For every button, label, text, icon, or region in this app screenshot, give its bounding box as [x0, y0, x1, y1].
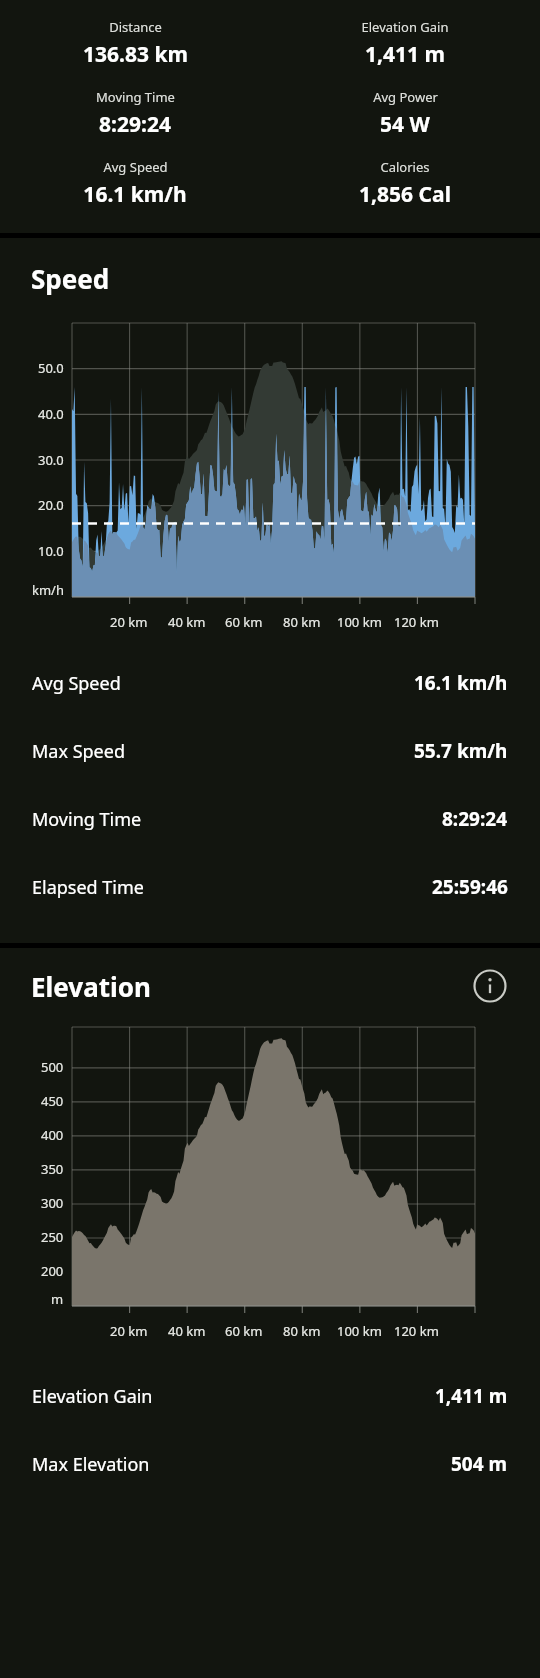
button[interactable]: Distance: [0, 18, 270, 69]
staticText: Moving Time: [32, 807, 142, 832]
staticText: Elevation Gain: [32, 1384, 153, 1409]
staticText: 60 km: [225, 1322, 263, 1340]
staticText: 54 W: [380, 110, 430, 139]
staticText: Avg Power: [373, 88, 438, 106]
staticText: 100 km: [337, 1322, 382, 1340]
button[interactable]: Avg Power: [270, 88, 540, 139]
staticText: 40 km: [168, 613, 206, 631]
staticText: Elevation Gain: [361, 18, 449, 36]
staticText: Avg Speed: [103, 158, 168, 176]
staticText: Elapsed Time: [32, 875, 144, 900]
staticText: 120 km: [394, 613, 439, 631]
staticText: 8:29:24: [99, 110, 171, 139]
staticText: 80 km: [283, 1322, 321, 1340]
staticText: 80 km: [283, 613, 321, 631]
button[interactable]: Elevation Gain: [270, 18, 540, 69]
staticText: 1,411 m: [365, 40, 445, 69]
staticText: 20 km: [110, 613, 148, 631]
staticText: 400: [41, 1126, 64, 1144]
staticText: 300: [41, 1194, 64, 1212]
staticText: 10.0: [38, 542, 64, 560]
button[interactable]: Elapsed Time: [0, 853, 540, 921]
staticText: 120 km: [394, 1322, 439, 1340]
button[interactable]: Moving Time: [0, 88, 270, 139]
staticText: 8:29:24: [442, 806, 508, 832]
staticText: 16.1 km/h: [414, 670, 508, 696]
staticText: 350: [41, 1160, 64, 1178]
staticText: Speed: [31, 261, 110, 296]
staticText: 30.0: [38, 451, 64, 469]
staticText: 20.0: [38, 496, 64, 514]
staticText: 50.0: [38, 359, 64, 377]
staticText: Avg Speed: [32, 671, 121, 696]
staticText: 60 km: [225, 613, 263, 631]
button[interactable]: Moving Time: [0, 785, 540, 853]
staticText: 136.83 km: [83, 40, 188, 69]
staticText: 100 km: [337, 613, 382, 631]
button[interactable]: Information about elevation: [471, 967, 509, 1005]
staticText: 40 km: [168, 1322, 206, 1340]
staticText: m: [51, 1290, 64, 1308]
button[interactable]: Avg Speed: [0, 649, 540, 717]
staticText: 504 m: [451, 1451, 508, 1477]
staticText: Moving Time: [96, 88, 175, 106]
staticText: Max Speed: [32, 739, 125, 764]
staticText: 1,856 Cal: [359, 180, 451, 209]
staticText: Calories: [380, 158, 430, 176]
staticText: 1,411 m: [435, 1383, 508, 1409]
staticText: 25:59:46: [432, 874, 508, 900]
staticText: 250: [41, 1228, 64, 1246]
staticText: 200: [41, 1262, 64, 1280]
button[interactable]: Max Speed: [0, 717, 540, 785]
staticText: 20 km: [110, 1322, 148, 1340]
staticText: 16.1 km/h: [83, 180, 187, 209]
button[interactable]: Elevation Gain: [0, 1362, 540, 1430]
staticText: Elevation: [31, 969, 151, 1004]
staticText: 55.7 km/h: [414, 738, 508, 764]
button[interactable]: Calories: [270, 158, 540, 209]
staticText: 500: [41, 1058, 64, 1076]
button[interactable]: Avg Speed: [0, 158, 270, 209]
staticText: Max Elevation: [32, 1452, 150, 1477]
staticText: km/h: [32, 581, 64, 599]
staticText: 40.0: [38, 405, 64, 423]
staticText: 450: [41, 1092, 64, 1110]
staticText: Distance: [109, 18, 162, 36]
button[interactable]: Max Elevation: [0, 1430, 540, 1498]
